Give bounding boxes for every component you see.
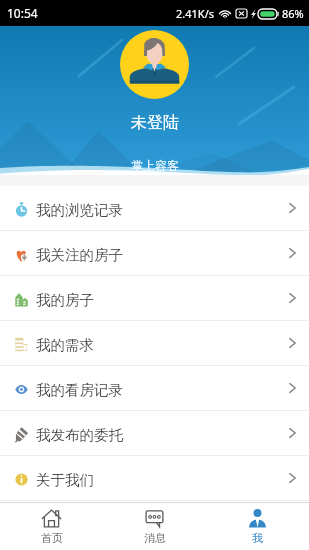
button[interactable]: 我的房子	[0, 276, 309, 320]
button[interactable]: 我	[206, 503, 309, 550]
staticText: 关于我们	[36, 471, 94, 489]
staticText: 首页	[41, 531, 63, 545]
staticText: 我	[252, 531, 263, 545]
button[interactable]: 我发布的委托	[0, 411, 309, 455]
staticText: 我发布的委托	[36, 426, 123, 444]
staticText: 2.41K/s	[176, 6, 214, 21]
staticText: 未登陆	[131, 113, 179, 133]
button[interactable]: 我的看房记录	[0, 366, 309, 410]
button[interactable]: 首页	[0, 503, 103, 550]
staticText: 我的房子	[36, 291, 94, 309]
staticText: 我的看房记录	[36, 381, 123, 399]
staticText: 86%	[282, 6, 304, 21]
button[interactable]: 我的需求	[0, 321, 309, 365]
staticText: 我关注的房子	[36, 246, 123, 264]
staticText: 10:54	[7, 5, 38, 21]
button[interactable]: 我关注的房子	[0, 231, 309, 275]
staticText: 我的需求	[36, 336, 94, 354]
staticText: 消息	[144, 531, 166, 545]
staticText: 掌上容客	[131, 158, 179, 173]
staticText: 我的浏览记录	[36, 201, 123, 219]
button[interactable]: 消息	[103, 503, 206, 550]
button[interactable]: 关于我们	[0, 456, 309, 500]
button[interactable]: 我的浏览记录	[0, 186, 309, 230]
